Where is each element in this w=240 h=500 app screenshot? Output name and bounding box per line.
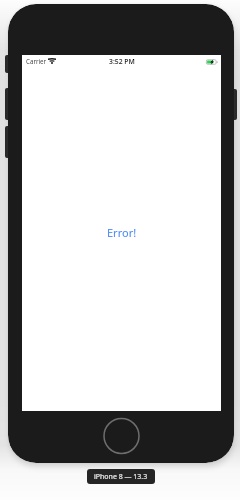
- staticText: Carrier: [26, 57, 47, 65]
- staticText: Error!: [107, 225, 137, 240]
- button[interactable]: iPhone 8 — 13.3: [87, 469, 155, 484]
- staticText: 3:52 PM: [109, 57, 135, 66]
- staticText: iPhone 8 — 13.3: [94, 472, 148, 482]
- other: Home: [104, 418, 140, 454]
